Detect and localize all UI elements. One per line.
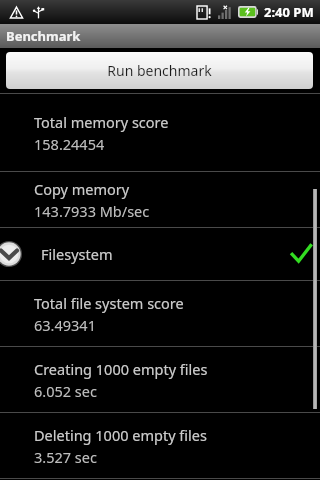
staticText: Run benchmark [107,61,212,80]
staticText: 6.052 sec [34,381,97,401]
staticText: 143.7933 Mb/sec [34,201,150,221]
button[interactable]: Total file system score [0,281,320,346]
other: Completed [291,244,311,264]
staticText: 3.527 sec [34,447,97,467]
staticText: Total memory score [34,112,169,132]
button[interactable]: Deleting 1000 empty files [0,413,320,478]
staticText: 158.24454 [34,134,105,154]
staticText: Deleting 1000 empty files [34,425,207,445]
button[interactable]: Run benchmark [6,52,313,89]
button[interactable]: Creating 1000 empty files [0,347,320,412]
staticText: Total file system score [34,293,184,313]
staticText: Benchmark [6,27,81,45]
staticText: 63.49341 [34,315,96,335]
button[interactable]: Collapse Filesystem [0,228,320,280]
other: Collapse Filesystem [0,241,22,267]
staticText: Filesystem [41,244,113,264]
button[interactable]: Total memory score [0,94,320,171]
staticText: Creating 1000 empty files [34,359,208,379]
staticText: Copy memory [34,179,130,199]
button[interactable]: Copy memory [0,172,320,227]
staticText: 2:40 PM [264,3,314,21]
